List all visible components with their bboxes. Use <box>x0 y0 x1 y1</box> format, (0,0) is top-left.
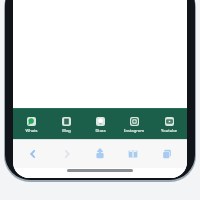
staticText: Dicas <box>95 128 106 133</box>
button[interactable]: Instagram <box>118 114 150 133</box>
button[interactable]: Whats <box>15 114 47 133</box>
staticText: Whats <box>25 128 38 133</box>
staticText: Youtube <box>161 128 177 133</box>
staticText: Instagram <box>124 128 144 133</box>
button[interactable]: Forward <box>54 141 80 167</box>
button[interactable]: Bookmarks <box>120 141 146 167</box>
staticText: Blog <box>62 128 71 133</box>
button[interactable]: Youtube <box>153 114 185 133</box>
button[interactable]: Back <box>20 141 46 167</box>
button[interactable]: Dicas <box>84 114 116 133</box>
button[interactable]: Tabs <box>154 141 180 167</box>
button[interactable]: Blog <box>50 114 82 133</box>
button[interactable]: Share <box>87 141 113 167</box>
